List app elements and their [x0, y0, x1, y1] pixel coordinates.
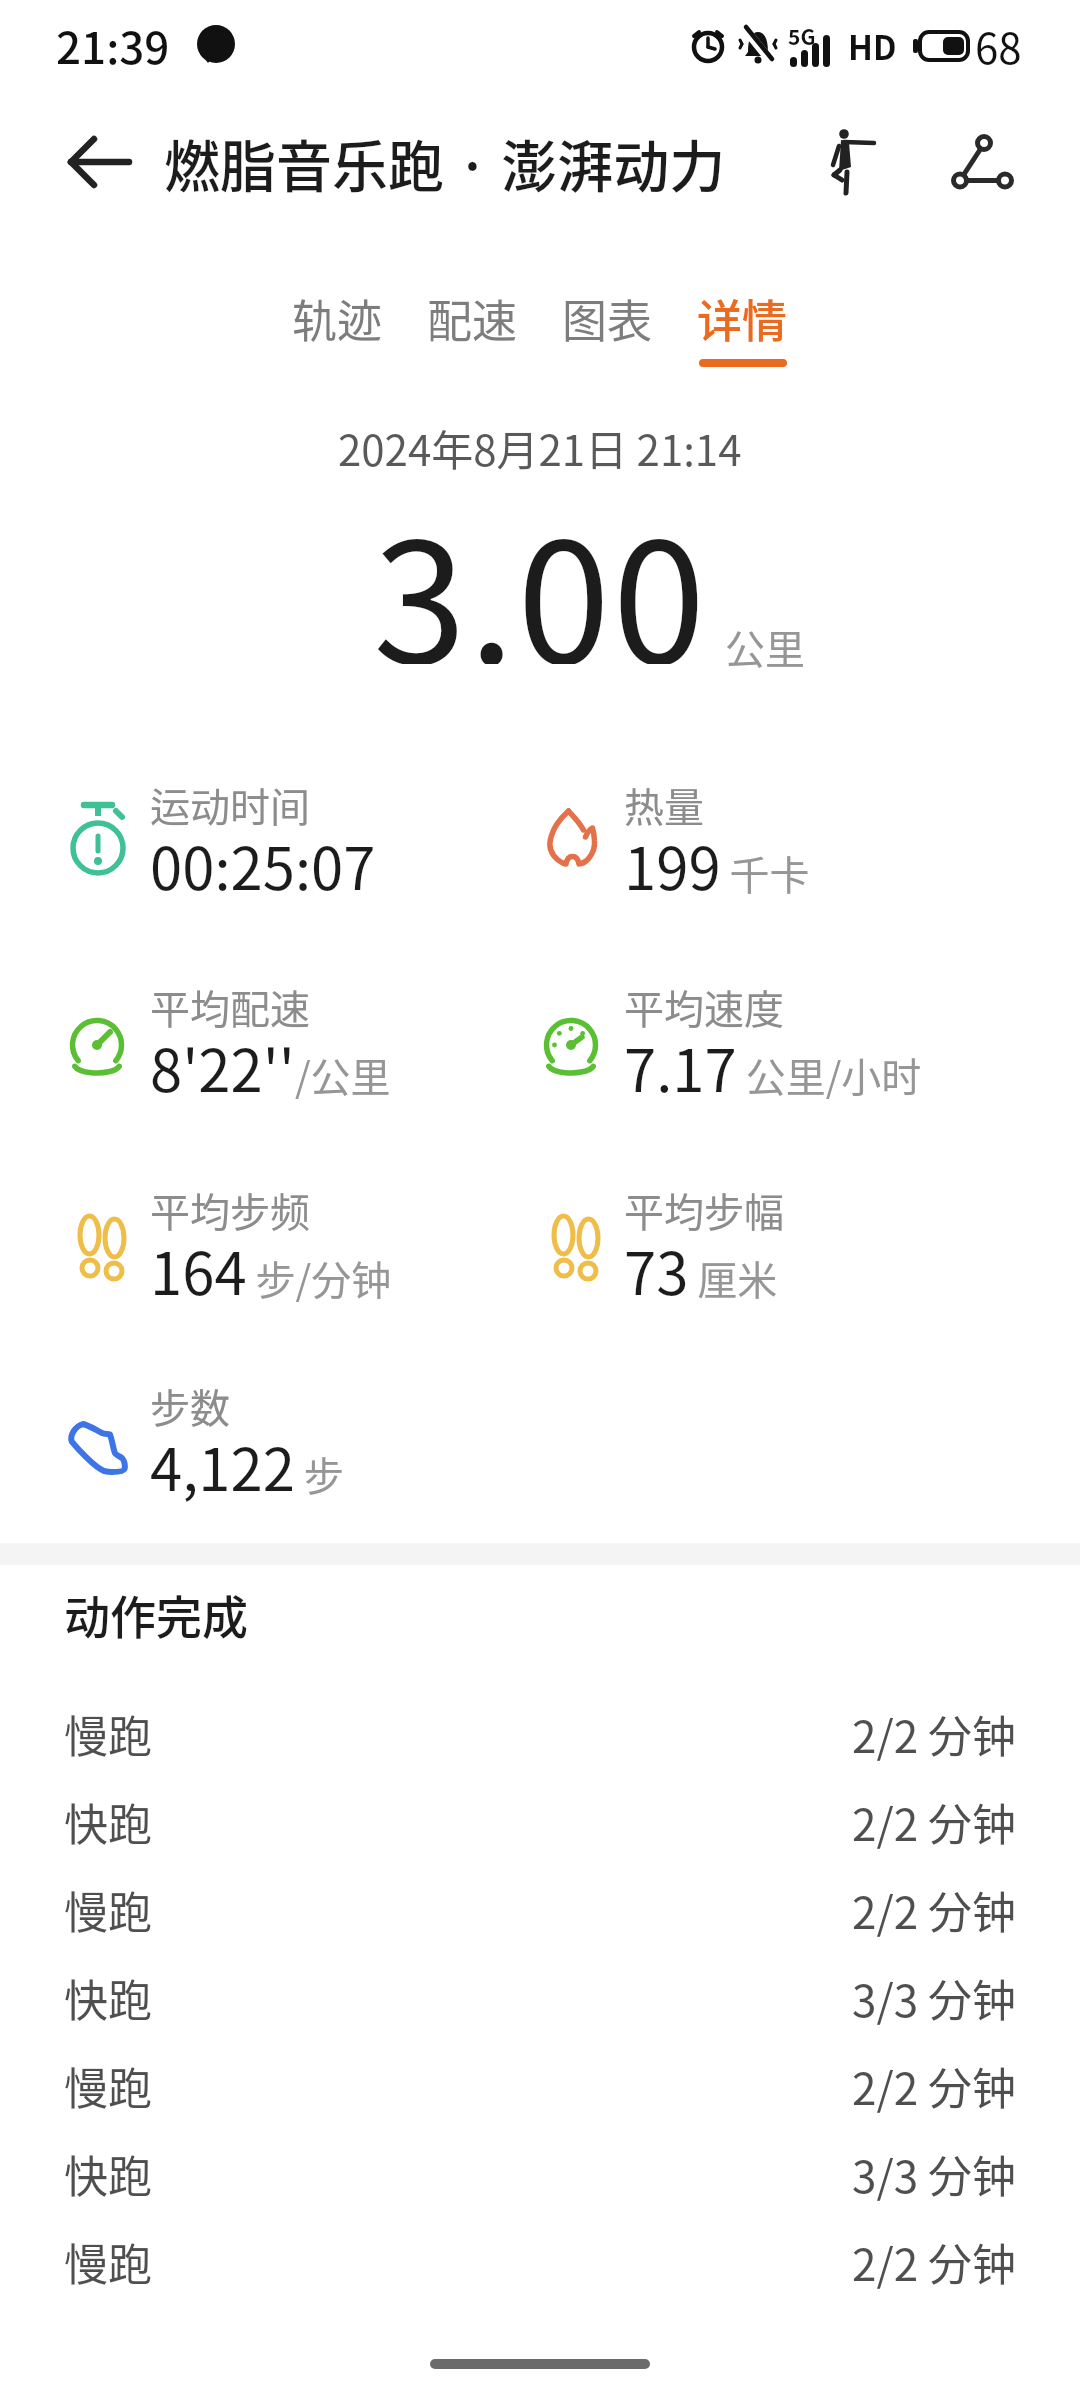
staticText: 68 [975, 15, 1022, 76]
staticText: 动作完成 [64, 1581, 248, 1648]
button[interactable] [52, 114, 148, 210]
staticText: 2/2 分钟 [852, 1702, 1016, 1766]
staticText: 慢跑 [64, 2230, 152, 2294]
staticText: 运动时间 [150, 776, 310, 834]
staticText: 快跑 [64, 2142, 152, 2206]
staticText: 2/2 分钟 [852, 1878, 1016, 1942]
button[interactable]: 配速 [427, 286, 518, 359]
staticText: 5G [788, 21, 816, 51]
staticText: 4,122 步 [150, 1424, 344, 1508]
staticText: 8'22''/公里 [150, 1025, 391, 1109]
staticText: 快跑 [64, 1966, 152, 2030]
button[interactable]: 详情 [697, 286, 788, 367]
button[interactable]: 慢跑 [0, 2218, 1080, 2306]
button[interactable]: 图表 [562, 286, 653, 359]
staticText: 73 厘米 [624, 1228, 778, 1312]
staticText: 燃脂音乐跑 · 澎湃动力 [164, 122, 726, 203]
button[interactable]: 轨迹 [292, 286, 383, 359]
staticText: 慢跑 [64, 2054, 152, 2118]
button[interactable]: 快跑 [0, 1778, 1080, 1866]
button[interactable] [818, 127, 888, 197]
staticText: HD [848, 22, 897, 70]
staticText: 3/3 分钟 [852, 1966, 1016, 2030]
staticText: 慢跑 [64, 1702, 152, 1766]
staticText: 21:39 [56, 13, 170, 77]
staticText: 3/3 分钟 [852, 2142, 1016, 2206]
staticText: 00:25:07 [150, 823, 376, 907]
staticText: 图表 [562, 286, 653, 351]
staticText: 配速 [427, 286, 518, 351]
staticText: 3.00 [373, 469, 708, 664]
button[interactable]: 快跑 [0, 2130, 1080, 2218]
staticText: 164 步/分钟 [150, 1228, 392, 1312]
staticText: 2/2 分钟 [852, 2054, 1016, 2118]
staticText: 199 千卡 [624, 823, 810, 907]
staticText: 详情 [697, 286, 788, 351]
staticText: 2024年8月21日 21:14 [338, 417, 742, 478]
staticText: 轨迹 [292, 286, 383, 351]
staticText: 2/2 分钟 [852, 2230, 1016, 2294]
button[interactable] [948, 127, 1018, 197]
staticText: 慢跑 [64, 1878, 152, 1942]
staticText: 步数 [150, 1377, 230, 1435]
staticText: 快跑 [64, 1790, 152, 1854]
staticText: 热量 [624, 776, 704, 834]
button[interactable]: 慢跑 [0, 2042, 1080, 2130]
button[interactable]: 快跑 [0, 1954, 1080, 2042]
button[interactable]: 慢跑 [0, 1866, 1080, 1954]
staticText: 公里 [725, 618, 805, 676]
staticText: 平均配速 [150, 978, 310, 1036]
staticText: 平均步频 [150, 1181, 310, 1239]
staticText: 平均速度 [624, 978, 784, 1036]
staticText: 7.17 公里/小时 [624, 1025, 922, 1109]
staticText: 2/2 分钟 [852, 1790, 1016, 1854]
button[interactable]: 慢跑 [0, 1690, 1080, 1778]
staticText: 平均步幅 [624, 1181, 784, 1239]
